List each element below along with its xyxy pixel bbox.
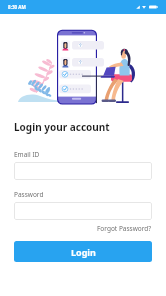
staticText: Password xyxy=(14,190,44,199)
button[interactable]: Forgot Password? xyxy=(97,224,152,233)
staticText: Login your account xyxy=(14,120,110,134)
staticText: 8:30 AM xyxy=(8,4,26,10)
button[interactable] xyxy=(14,162,152,180)
staticText: Email ID xyxy=(14,150,40,159)
button[interactable] xyxy=(14,202,152,220)
button[interactable]: Login xyxy=(14,241,152,262)
staticText: Login xyxy=(71,246,96,258)
